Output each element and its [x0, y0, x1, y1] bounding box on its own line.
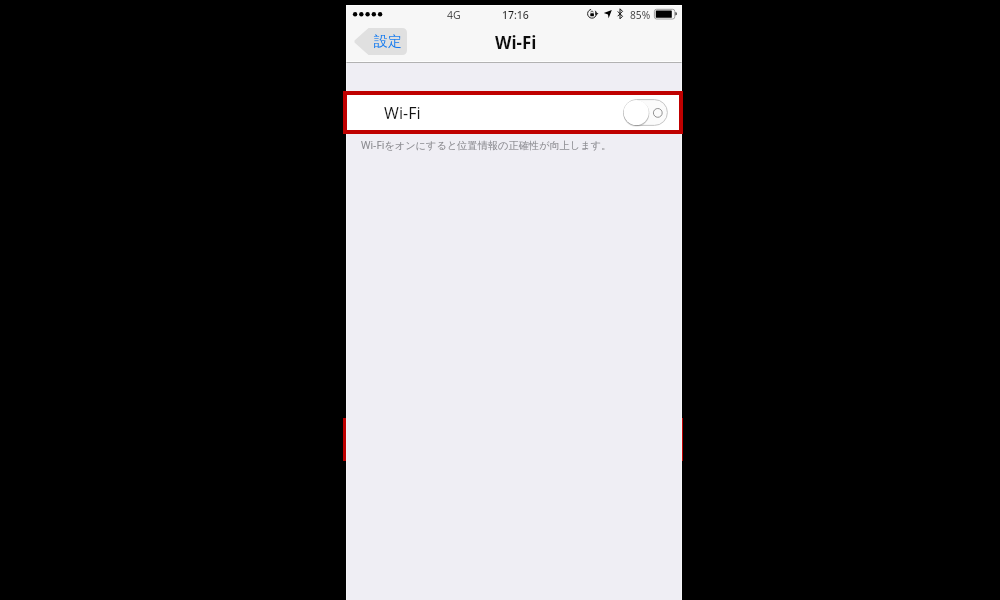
staticText: 17:16 — [502, 8, 529, 22]
staticText: 設定 — [374, 33, 402, 51]
staticText: Wi-Fiをオンにすると位置情報の正確性が向上します。 — [361, 138, 612, 152]
button[interactable]: Wi-Fi toggle — [623, 99, 668, 126]
button[interactable]: Wi-Fi — [346, 95, 682, 130]
staticText: 4G — [447, 8, 461, 22]
staticText: Wi-Fi — [495, 31, 537, 54]
button[interactable]: Back to 設定 — [354, 28, 407, 55]
staticText: 85% — [630, 8, 651, 22]
staticText: Wi-Fi — [384, 102, 421, 124]
